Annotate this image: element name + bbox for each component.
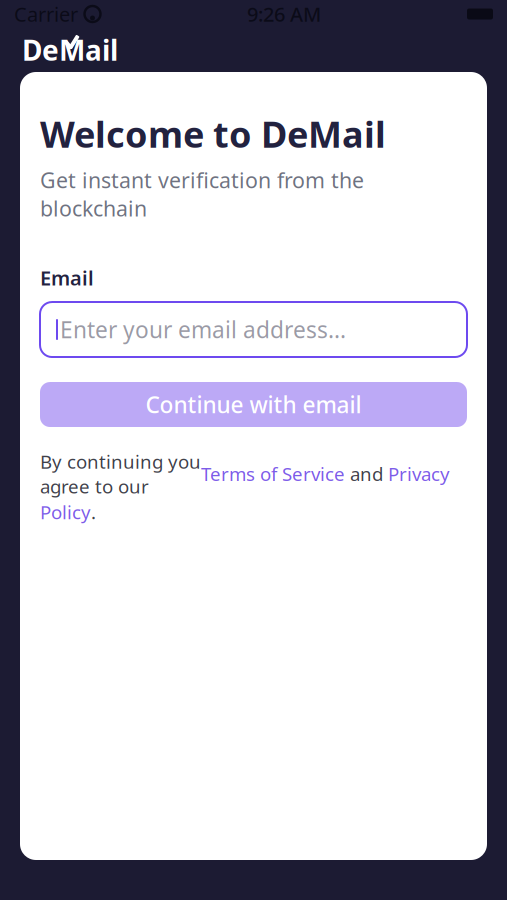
button[interactable]: Continue with email [40, 382, 467, 427]
staticText: By continuing you agree to our [40, 449, 201, 499]
staticText: Continue with email [145, 389, 361, 420]
staticText: and [345, 461, 388, 486]
button[interactable]: Policy [40, 500, 91, 524]
staticText: Email [40, 264, 94, 291]
staticText: Welcome to DeMail [40, 110, 386, 158]
staticText: . [91, 500, 96, 524]
button[interactable]: Enter your email address... [40, 302, 467, 357]
staticText: Enter your email address... [60, 314, 346, 345]
staticText: Get instant verification from the blockc… [40, 166, 364, 222]
staticText: Terms of Service [201, 461, 345, 486]
button[interactable]: Privacy [388, 461, 450, 486]
staticText: Policy [40, 500, 91, 524]
staticText: 9:26 AM [247, 1, 321, 27]
staticText: DeMail [22, 31, 118, 69]
staticText: Carrier [14, 1, 78, 27]
staticText: Privacy [388, 461, 450, 486]
button[interactable]: Terms of Service [201, 461, 345, 486]
